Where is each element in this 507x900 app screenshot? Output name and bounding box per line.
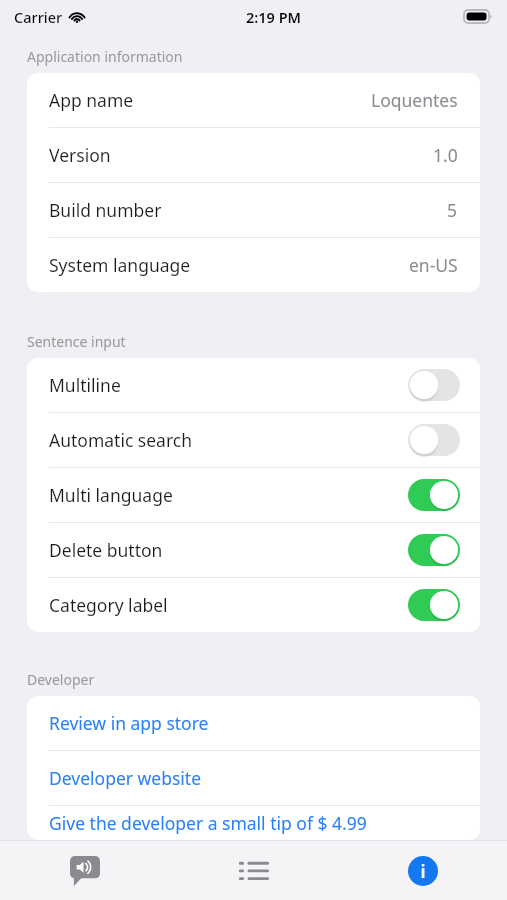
button[interactable]: Developer website [27,751,480,806]
staticText: Sentence input [27,332,126,351]
staticText: Developer [27,670,95,689]
button[interactable]: Multiline [27,358,480,413]
staticText: i [420,859,426,884]
staticText: 5 [447,198,458,222]
button[interactable]: Version [27,128,480,183]
staticText: System language [49,253,191,277]
staticText: Automatic search [49,428,193,452]
button[interactable]: Give the developer a small tip of $ 4.99 [27,806,480,840]
staticText: en-US [409,253,458,277]
staticText: Carrier [14,7,63,27]
button[interactable]: Review in app store [27,696,480,751]
staticText: App name [49,88,134,112]
staticText: Delete button [49,538,163,562]
staticText: Build number [49,198,162,222]
staticText: Developer website [49,766,202,790]
staticText: Review in app store [49,711,209,735]
staticText: Multi language [49,483,173,507]
staticText: 2:19 PM [246,7,302,27]
staticText: Version [49,143,111,167]
staticText: 1.0 [433,143,458,167]
button[interactable]: Category label [27,578,480,632]
staticText: Multiline [49,373,121,397]
button[interactable]: Build number [27,183,480,238]
staticText: Loquentes [371,88,458,112]
staticText: Application information [27,47,183,66]
button[interactable]: Speak [0,841,169,900]
staticText: Give the developer a small tip of $ 4.99 [49,811,367,835]
button[interactable]: Information [338,841,507,900]
button[interactable]: List [169,841,338,900]
button[interactable]: System language [27,238,480,292]
button[interactable]: Delete button [27,523,480,578]
staticText: Category label [49,593,168,617]
button[interactable]: App name [27,73,480,128]
button[interactable]: Multi language [27,468,480,523]
button[interactable]: Automatic search [27,413,480,468]
